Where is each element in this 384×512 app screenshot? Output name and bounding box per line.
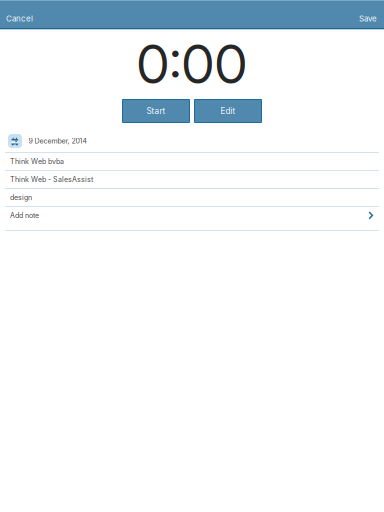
button[interactable]: Start bbox=[122, 99, 189, 122]
staticText: Think Web - SalesAssist bbox=[10, 175, 93, 184]
staticText: Add note bbox=[10, 211, 39, 220]
staticText: 9 December, 2014 bbox=[28, 137, 87, 145]
button[interactable]: Think Web - SalesAssist bbox=[0, 171, 384, 188]
staticText: Save bbox=[359, 14, 377, 23]
button[interactable]: Add note bbox=[0, 207, 384, 230]
staticText: Start bbox=[146, 106, 165, 116]
button[interactable]: Edit bbox=[194, 99, 261, 122]
button[interactable]: Think Web bvba bbox=[0, 153, 384, 170]
button[interactable]: Save bbox=[329, 1, 384, 27]
button[interactable]: 9 December, 2014 bbox=[0, 130, 384, 152]
staticText: Think Web bvba bbox=[10, 157, 64, 166]
staticText: design bbox=[10, 193, 32, 202]
staticText: Cancel bbox=[6, 14, 33, 23]
staticText: 0:00 bbox=[136, 32, 247, 96]
button[interactable]: Cancel bbox=[0, 1, 54, 27]
staticText: Edit bbox=[220, 106, 235, 116]
button[interactable]: design bbox=[0, 189, 384, 206]
